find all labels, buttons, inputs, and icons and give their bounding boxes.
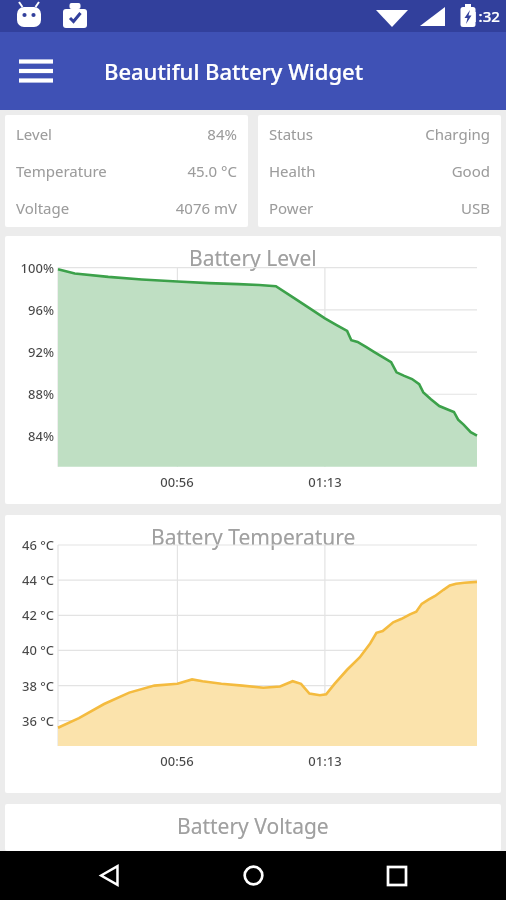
button[interactable]: Home bbox=[218, 851, 288, 900]
staticText: 01:13 bbox=[290, 473, 360, 491]
staticText: 01:13 bbox=[290, 752, 360, 770]
staticText: 92% bbox=[7, 343, 54, 361]
staticText: Battery Level bbox=[189, 244, 317, 273]
staticText: 84% bbox=[7, 427, 54, 445]
staticText: Charging bbox=[425, 124, 490, 144]
button[interactable]: Battery Temperature bbox=[5, 515, 501, 793]
staticText: 96% bbox=[7, 301, 54, 319]
staticText: Health bbox=[269, 161, 316, 181]
staticText: Level bbox=[16, 124, 52, 144]
staticText: 44 °C bbox=[7, 571, 54, 589]
staticText: Status bbox=[269, 124, 313, 144]
button[interactable]: Status bbox=[258, 115, 501, 227]
staticText: 42 °C bbox=[7, 606, 54, 624]
staticText: 00:56 bbox=[142, 473, 212, 491]
staticText: 100% bbox=[7, 259, 54, 277]
staticText: Temperature bbox=[16, 161, 107, 181]
staticText: 38 °C bbox=[7, 677, 54, 695]
staticText: 36 °C bbox=[7, 712, 54, 730]
button[interactable]: Back bbox=[74, 851, 144, 900]
staticText: 4076 mV bbox=[175, 198, 237, 218]
staticText: Battery Temperature bbox=[151, 523, 356, 552]
button[interactable]: Battery Level bbox=[5, 236, 501, 504]
staticText: Good bbox=[451, 161, 490, 181]
staticText: Power bbox=[269, 198, 314, 218]
staticText: USB bbox=[461, 198, 490, 218]
button[interactable]: Level bbox=[5, 115, 248, 227]
button[interactable]: Battery Voltage bbox=[5, 804, 501, 851]
staticText: Battery Voltage bbox=[177, 812, 329, 841]
button[interactable]: Recent apps bbox=[362, 851, 432, 900]
staticText: 46 °C bbox=[7, 536, 54, 554]
staticText: 40 °C bbox=[7, 641, 54, 659]
staticText: Voltage bbox=[16, 198, 70, 218]
staticText: 88% bbox=[7, 385, 54, 403]
staticText: 00:56 bbox=[142, 752, 212, 770]
staticText: Beautiful Battery Widget bbox=[104, 56, 364, 86]
staticText: 1:32 bbox=[470, 6, 500, 26]
staticText: 84% bbox=[207, 124, 237, 144]
staticText: 45.0 °C bbox=[187, 161, 237, 181]
button[interactable]: Open navigation menu bbox=[10, 45, 62, 97]
